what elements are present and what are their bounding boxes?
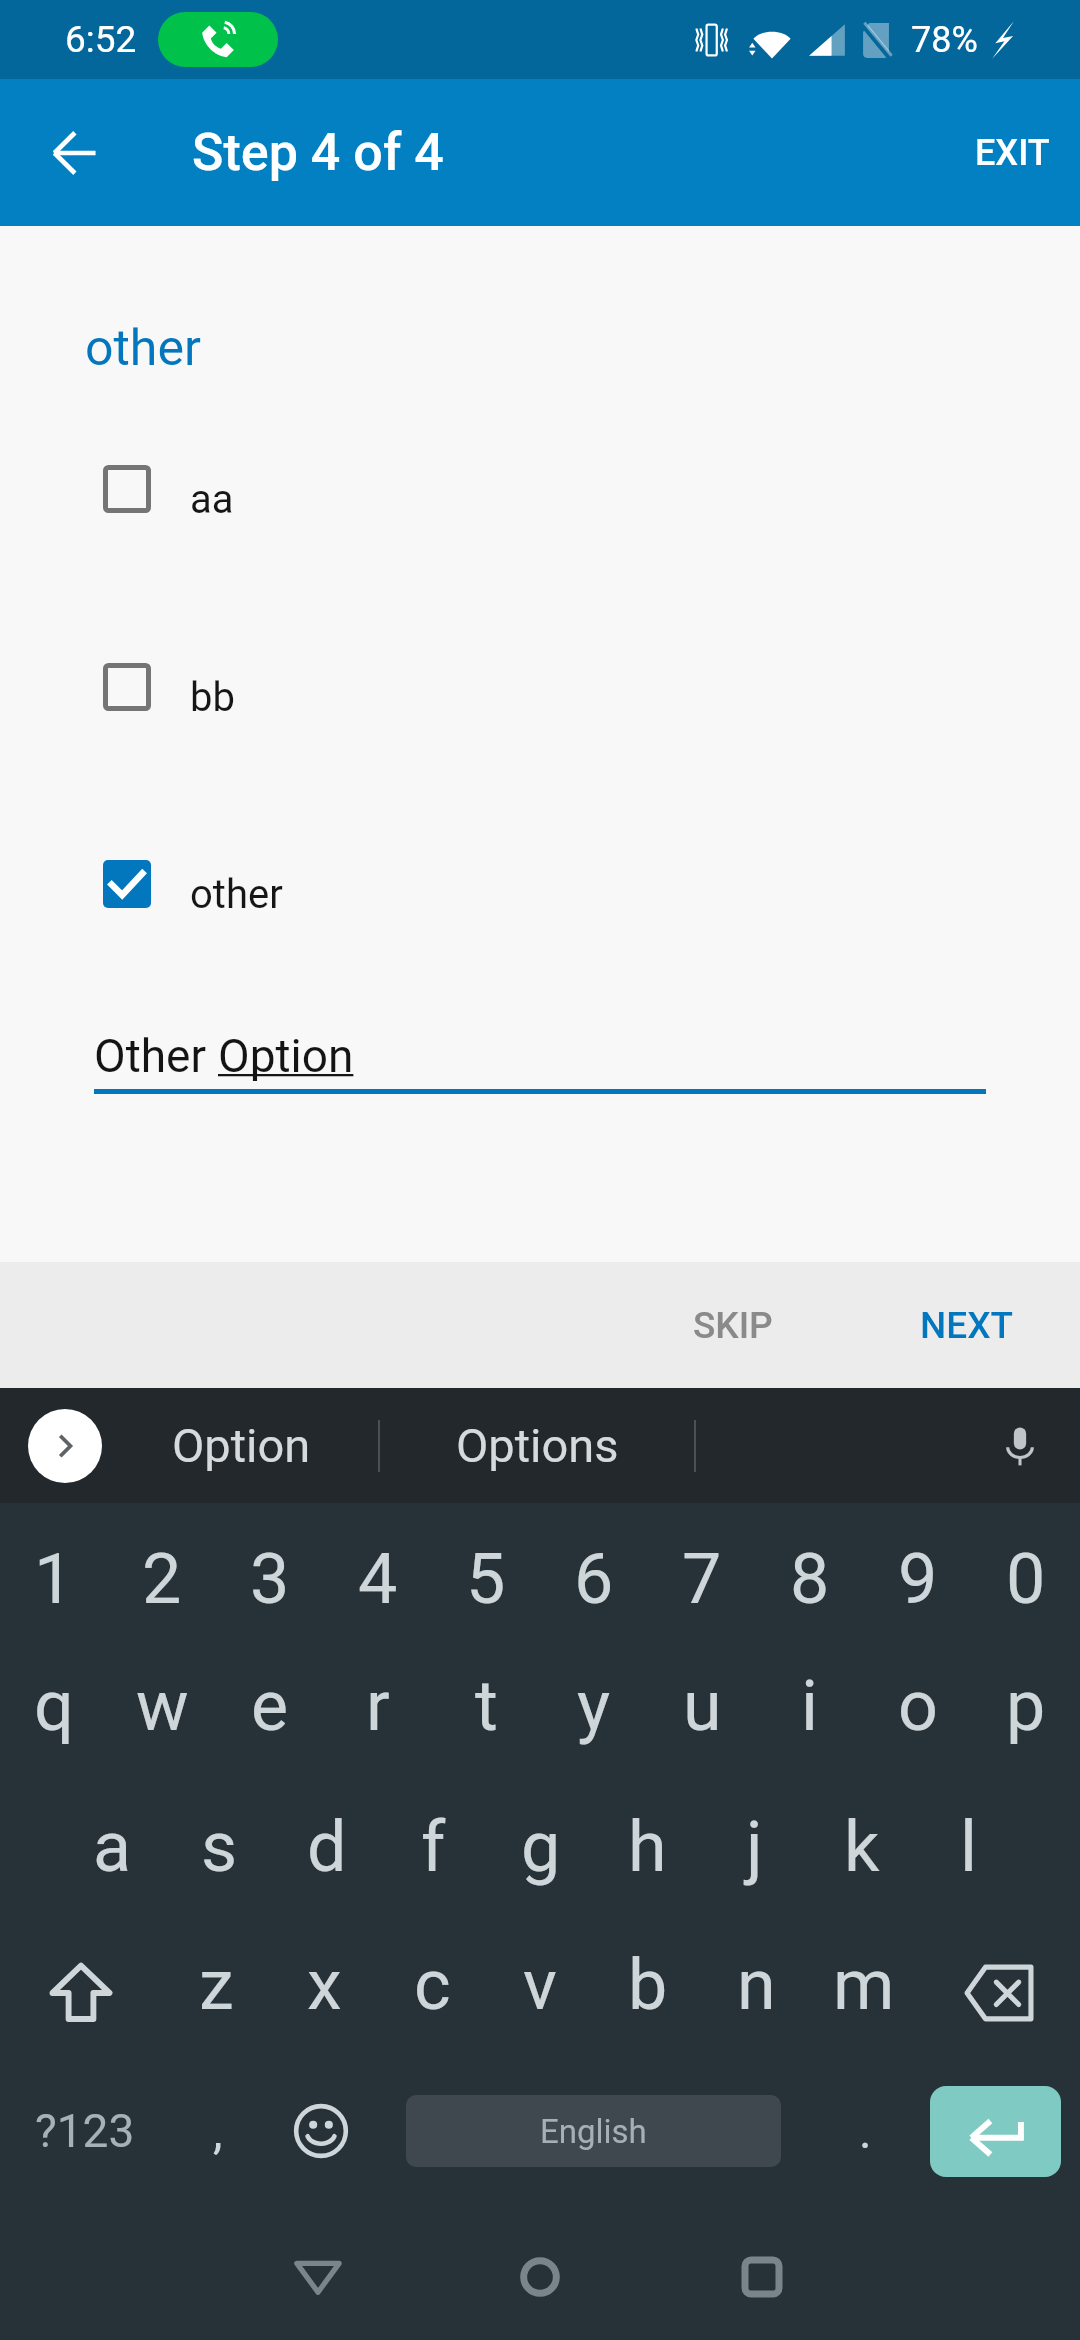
staticText: c: [414, 1944, 451, 2026]
button[interactable]: p: [972, 1643, 1080, 1783]
staticText: NEXT: [920, 1304, 1014, 1347]
staticText: a: [93, 1806, 132, 1888]
button[interactable]: c: [378, 1923, 486, 2062]
button[interactable]: ,: [170, 2062, 266, 2200]
staticText: v: [523, 1944, 557, 2026]
button[interactable]: o: [864, 1643, 972, 1783]
staticText: l: [960, 1806, 978, 1888]
staticText: 0: [1006, 1538, 1046, 1620]
staticText: i: [801, 1665, 819, 1747]
staticText: other: [85, 319, 201, 378]
staticText: SKIP: [693, 1304, 773, 1347]
button[interactable]: SKIP: [657, 1278, 809, 1373]
staticText: p: [1006, 1665, 1046, 1747]
staticText: 1: [34, 1538, 74, 1620]
button[interactable]: Recents: [651, 2200, 873, 2340]
staticText: g: [521, 1806, 561, 1888]
staticText: n: [737, 1944, 776, 2026]
button[interactable]: 9: [864, 1503, 972, 1643]
button[interactable]: f: [380, 1783, 487, 1923]
button[interactable]: Expand suggestions: [28, 1409, 102, 1483]
staticText: 3: [250, 1538, 290, 1620]
button[interactable]: h: [594, 1783, 701, 1923]
staticText: j: [746, 1806, 763, 1888]
button[interactable]: 7: [648, 1503, 756, 1643]
button[interactable]: Home: [429, 2200, 651, 2340]
button[interactable]: aa: [0, 465, 1080, 513]
button[interactable]: n: [702, 1923, 810, 2062]
button[interactable]: EXIT: [945, 108, 1080, 198]
button[interactable]: Emoji: [266, 2062, 376, 2200]
staticText: u: [683, 1665, 722, 1747]
button[interactable]: b: [594, 1923, 702, 2062]
button[interactable]: other: [0, 860, 1080, 908]
staticText: w: [136, 1665, 189, 1747]
staticText: 7: [682, 1538, 722, 1620]
staticText: s: [201, 1806, 238, 1888]
button[interactable]: e: [216, 1643, 324, 1783]
staticText: x: [307, 1944, 342, 2026]
button[interactable]: m: [810, 1923, 918, 2062]
button[interactable]: x: [270, 1923, 378, 2062]
button[interactable]: l: [915, 1783, 1022, 1923]
button[interactable]: 8: [756, 1503, 864, 1643]
button[interactable]: v: [486, 1923, 594, 2062]
staticText: other: [190, 871, 283, 918]
staticText: f: [421, 1806, 446, 1888]
button[interactable]: 0: [972, 1503, 1080, 1643]
staticText: ?123: [35, 2104, 135, 2158]
button[interactable]: u: [648, 1643, 756, 1783]
staticText: m: [833, 1944, 895, 2026]
staticText: Options: [456, 1418, 619, 1473]
staticText: .: [859, 2103, 872, 2159]
staticText: y: [577, 1665, 611, 1747]
button[interactable]: d: [273, 1783, 380, 1923]
button[interactable]: 4: [324, 1503, 432, 1643]
staticText: r: [366, 1665, 390, 1747]
button[interactable]: Back: [207, 2200, 429, 2340]
button[interactable]: 3: [216, 1503, 324, 1643]
staticText: 2: [142, 1538, 182, 1620]
button[interactable]: k: [808, 1783, 915, 1923]
staticText: Step 4 of 4: [192, 122, 444, 183]
staticText: English: [540, 2112, 647, 2151]
staticText: bb: [190, 674, 235, 721]
staticText: b: [628, 1944, 668, 2026]
staticText: e: [251, 1665, 289, 1747]
staticText: EXIT: [975, 132, 1050, 174]
button[interactable]: bb: [0, 663, 1080, 711]
staticText: q: [34, 1665, 74, 1747]
button[interactable]: Backspace: [918, 1923, 1080, 2062]
button[interactable]: Voice input: [990, 1416, 1050, 1476]
button[interactable]: j: [701, 1783, 808, 1923]
button[interactable]: 6: [540, 1503, 648, 1643]
button[interactable]: y: [540, 1643, 648, 1783]
staticText: 5: [466, 1538, 506, 1620]
button[interactable]: r: [324, 1643, 432, 1783]
button[interactable]: English: [406, 2095, 781, 2167]
button[interactable]: q: [0, 1643, 108, 1783]
button[interactable]: z: [162, 1923, 270, 2062]
staticText: t: [475, 1665, 498, 1747]
button[interactable]: w: [108, 1643, 216, 1783]
staticText: k: [844, 1806, 880, 1888]
button[interactable]: 2: [108, 1503, 216, 1643]
staticText: o: [898, 1665, 938, 1747]
button[interactable]: a: [59, 1783, 166, 1923]
button[interactable]: .: [810, 2062, 920, 2200]
button[interactable]: Back: [30, 109, 118, 197]
button[interactable]: s: [166, 1783, 273, 1923]
button[interactable]: 1: [0, 1503, 108, 1643]
button[interactable]: g: [487, 1783, 594, 1923]
button[interactable]: Shift: [0, 1923, 162, 2062]
staticText: aa: [190, 476, 234, 523]
staticText: 6: [574, 1538, 614, 1620]
button[interactable]: 5: [432, 1503, 540, 1643]
button[interactable]: NEXT: [884, 1278, 1050, 1373]
button[interactable]: ?123: [0, 2062, 170, 2200]
button[interactable]: t: [432, 1643, 540, 1783]
button[interactable]: Enter: [930, 2086, 1061, 2177]
button[interactable]: i: [756, 1643, 864, 1783]
staticText: 6:52: [65, 18, 137, 61]
staticText: Option: [172, 1418, 311, 1473]
